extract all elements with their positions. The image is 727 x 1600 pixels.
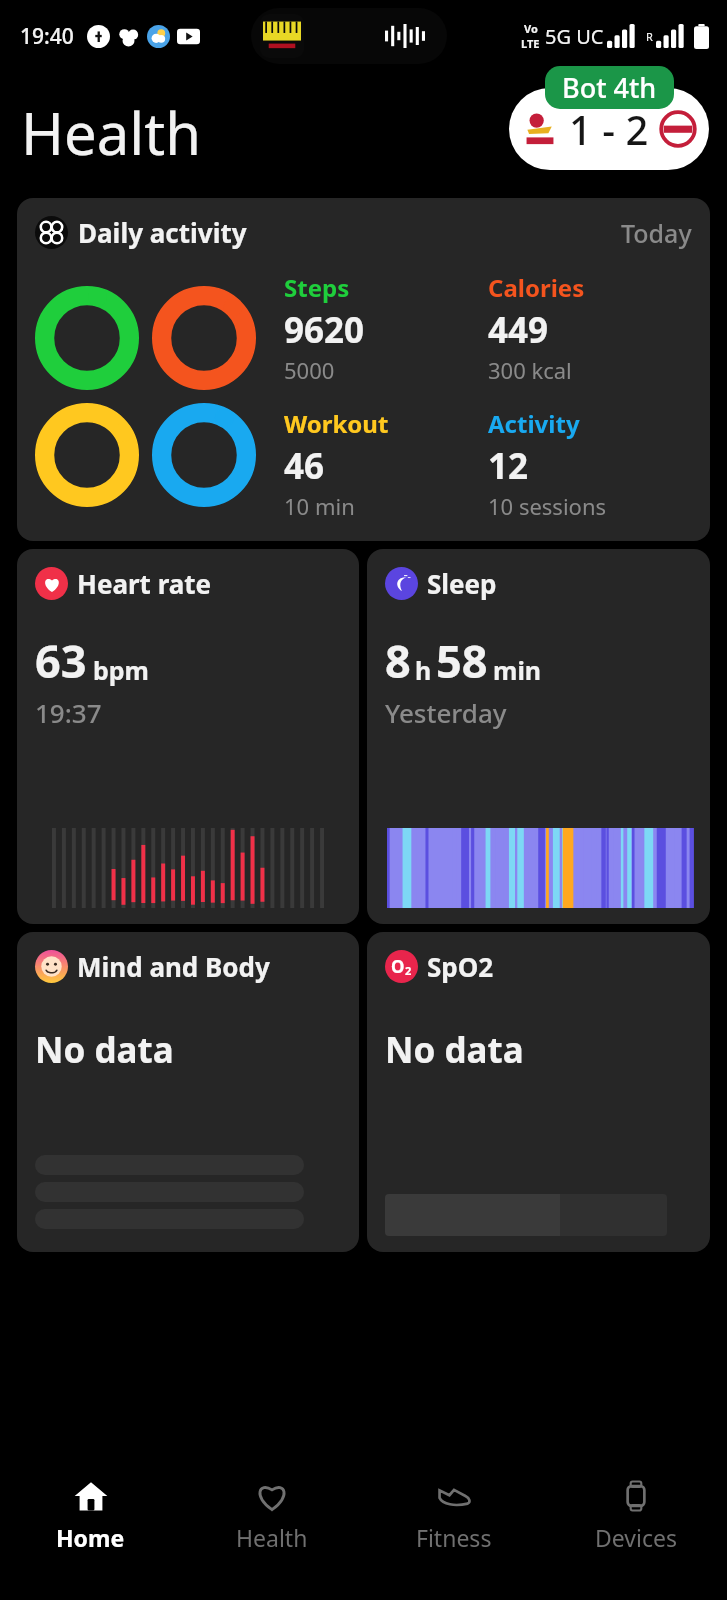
staticText: Devices xyxy=(595,1522,677,1553)
button[interactable]: Sleep xyxy=(367,549,710,924)
staticText: LTE xyxy=(521,36,540,51)
staticText: Yesterday xyxy=(385,695,507,730)
staticText: 12 xyxy=(488,442,529,490)
staticText: h xyxy=(415,653,432,687)
staticText: min xyxy=(493,653,542,687)
staticText: SpO2 xyxy=(427,949,494,984)
staticText: Sleep xyxy=(427,566,497,601)
staticText: 5G UC xyxy=(545,23,604,50)
button[interactable]: Home xyxy=(0,1455,181,1600)
staticText: Vo xyxy=(524,21,538,36)
staticText: Health xyxy=(21,93,201,172)
staticText: 10 min xyxy=(284,491,355,521)
staticText: 449 xyxy=(488,306,549,354)
staticText: Steps xyxy=(284,271,350,304)
button[interactable]: Mind and Body xyxy=(17,932,359,1252)
staticText: Home xyxy=(56,1522,125,1553)
staticText: 8 xyxy=(385,630,411,691)
button[interactable]: O xyxy=(367,932,710,1252)
staticText: bpm xyxy=(93,653,149,687)
staticText: Mind and Body xyxy=(77,949,270,984)
button[interactable]: Health xyxy=(181,1455,363,1600)
staticText: 2 xyxy=(405,963,412,978)
staticText: 9620 xyxy=(284,306,365,354)
staticText: O xyxy=(391,955,405,978)
staticText: 63 xyxy=(35,630,87,691)
staticText: Health xyxy=(236,1522,308,1553)
staticText: Workout xyxy=(284,407,389,440)
staticText: 58 xyxy=(436,630,488,691)
staticText: 300 kcal xyxy=(488,355,572,385)
staticText: 1 - 2 xyxy=(569,102,649,156)
staticText: Today xyxy=(621,216,692,250)
staticText: 46 xyxy=(284,442,325,490)
staticText: Activity xyxy=(488,407,580,440)
staticText: 19:40 xyxy=(20,22,74,51)
staticText: Heart rate xyxy=(77,566,212,601)
staticText: Daily activity xyxy=(78,215,247,250)
button[interactable]: Daily activity xyxy=(17,198,710,541)
button[interactable]: Heart rate xyxy=(17,549,359,924)
staticText: Fitness xyxy=(416,1522,492,1553)
button[interactable]: Game score Cardinals 1 Reds 2 xyxy=(509,88,709,170)
staticText: Bot 4th xyxy=(562,69,657,106)
staticText: No data xyxy=(35,1026,174,1074)
staticText: 10 sessions xyxy=(488,491,607,521)
staticText: No data xyxy=(385,1026,524,1074)
button[interactable]: Fitness xyxy=(363,1455,545,1600)
button[interactable]: Devices xyxy=(545,1455,727,1600)
staticText: Calories xyxy=(488,271,585,304)
staticText: 5000 xyxy=(284,355,335,385)
staticText: R xyxy=(646,29,653,44)
staticText: 19:37 xyxy=(35,695,102,730)
button[interactable]: Now playing xyxy=(251,8,447,64)
